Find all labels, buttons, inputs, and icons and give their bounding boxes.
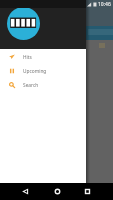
button[interactable]: Upcoming bbox=[0, 64, 86, 78]
button[interactable]: Back bbox=[19, 185, 32, 198]
staticText: Hits bbox=[23, 54, 32, 61]
staticText: Upcoming bbox=[23, 68, 47, 75]
staticText: Search bbox=[23, 82, 39, 89]
button[interactable]: Recents bbox=[81, 185, 94, 198]
button[interactable]: Search bbox=[0, 78, 86, 92]
staticText: 10:46 bbox=[98, 1, 111, 8]
button[interactable]: Home bbox=[51, 185, 64, 198]
button[interactable]: Hits bbox=[0, 50, 86, 64]
